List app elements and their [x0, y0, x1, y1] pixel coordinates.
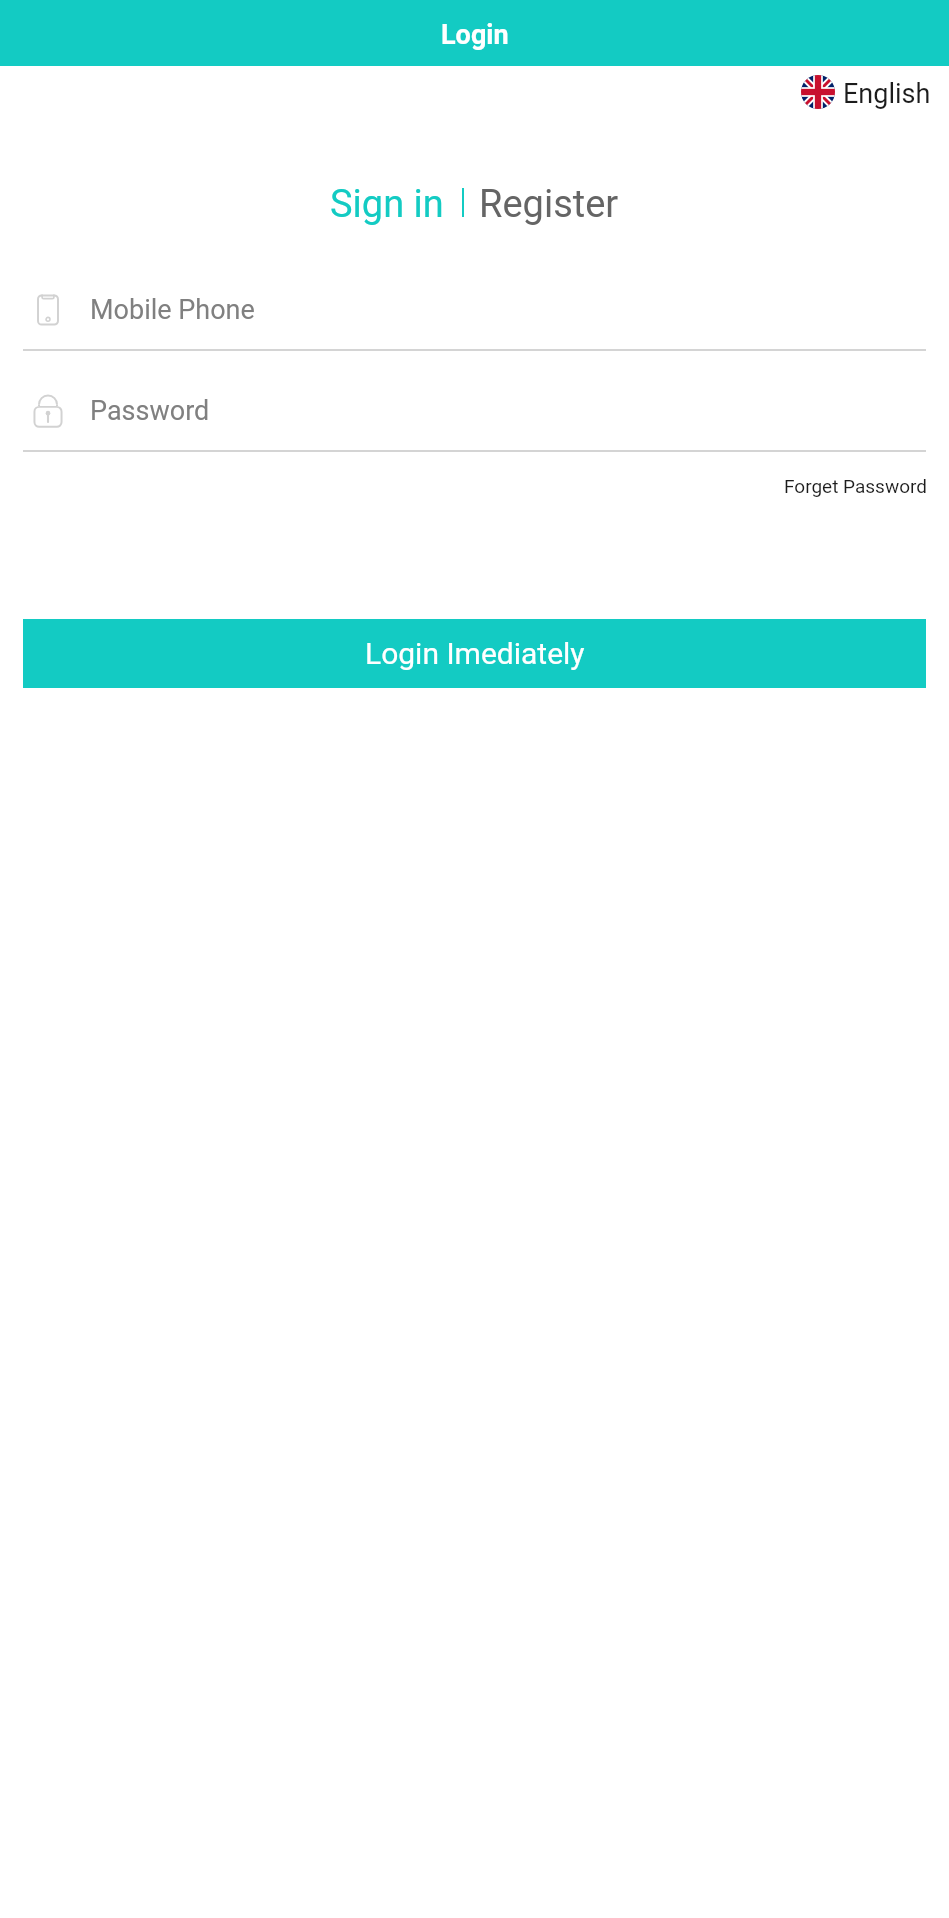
staticText: Mobile Phone: [90, 294, 255, 326]
staticText: Login: [441, 19, 509, 51]
button[interactable]: Sign in: [330, 176, 444, 232]
staticText: Sign in: [330, 182, 444, 227]
staticText: English: [843, 78, 931, 110]
staticText: Login Imediately: [365, 636, 585, 671]
button[interactable]: Password: [23, 350, 926, 452]
other: Mobile phone: [31, 293, 65, 327]
staticText: Password: [90, 395, 210, 427]
button[interactable]: Login Imediately: [23, 619, 926, 688]
button[interactable]: Mobile phone: [23, 249, 926, 351]
other: Password: [31, 394, 65, 428]
button[interactable]: Register: [479, 176, 619, 232]
staticText: Forget Password: [784, 475, 928, 497]
staticText: Register: [479, 182, 619, 227]
button[interactable]: Forget Password: [761, 466, 949, 506]
button[interactable]: English: [801, 70, 931, 114]
